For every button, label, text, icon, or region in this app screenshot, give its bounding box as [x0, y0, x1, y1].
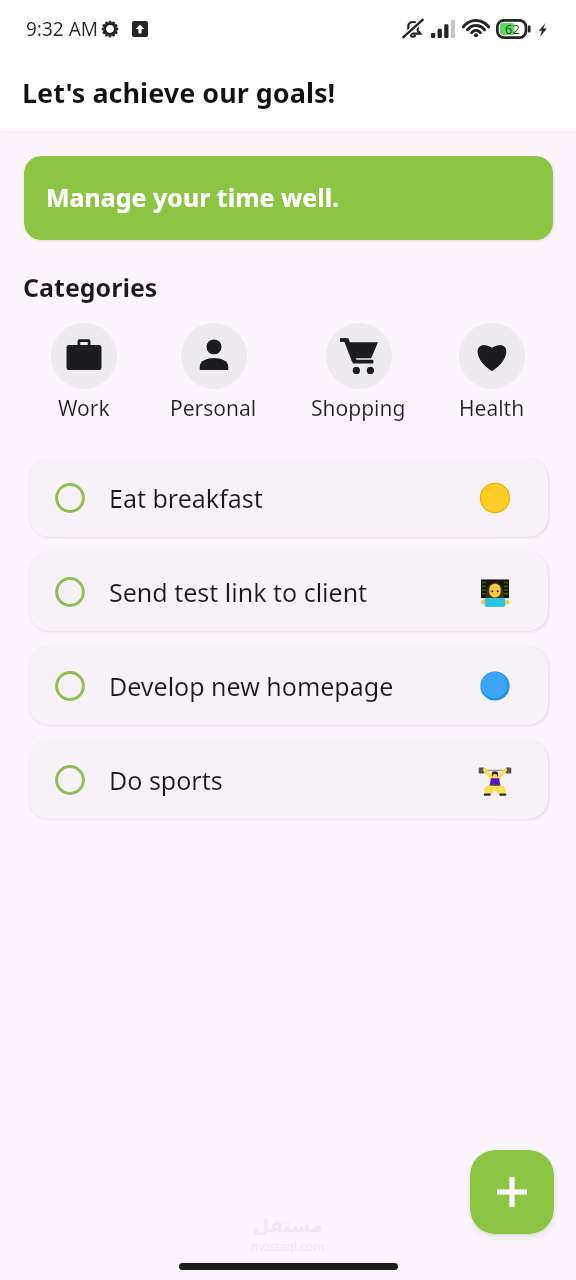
staticText: Work — [58, 394, 110, 423]
button[interactable]: Health — [459, 323, 525, 423]
staticText: مستقل — [253, 1214, 323, 1236]
staticText: 9:32 AM — [26, 16, 99, 42]
other: Cellular signal — [431, 20, 456, 38]
staticText: Personal — [170, 394, 257, 423]
staticText: Categories — [23, 270, 158, 304]
staticText: Manage your time well. — [46, 180, 340, 214]
other: Silent mode — [400, 16, 426, 42]
button[interactable]: Work — [51, 323, 117, 423]
button[interactable]: Shopping — [311, 323, 406, 423]
other: Wi-Fi — [462, 19, 490, 39]
staticText: Eat breakfast — [109, 481, 263, 515]
staticText: Shopping — [311, 394, 406, 423]
button[interactable]: Eat breakfast — [29, 458, 548, 537]
button[interactable]: Add task — [470, 1150, 554, 1234]
button[interactable]: Send test link to client — [29, 552, 548, 631]
button[interactable]: Develop new homepage — [29, 646, 548, 725]
staticText: mostaql.com — [251, 1238, 325, 1254]
button[interactable]: Do sports — [29, 740, 548, 819]
staticText: Health — [459, 394, 525, 423]
staticText: Do sports — [109, 763, 223, 797]
staticText: 62 — [505, 20, 520, 38]
other: Charging — [537, 21, 548, 38]
other: Uploading — [132, 21, 148, 37]
button[interactable]: Manage your time well. — [24, 156, 553, 240]
button[interactable]: Personal — [170, 323, 257, 423]
staticText: Develop new homepage — [109, 669, 394, 703]
staticText: Let's achieve our goals! — [22, 74, 336, 111]
other: Settings — [101, 20, 119, 38]
staticText: Send test link to client — [109, 575, 368, 609]
